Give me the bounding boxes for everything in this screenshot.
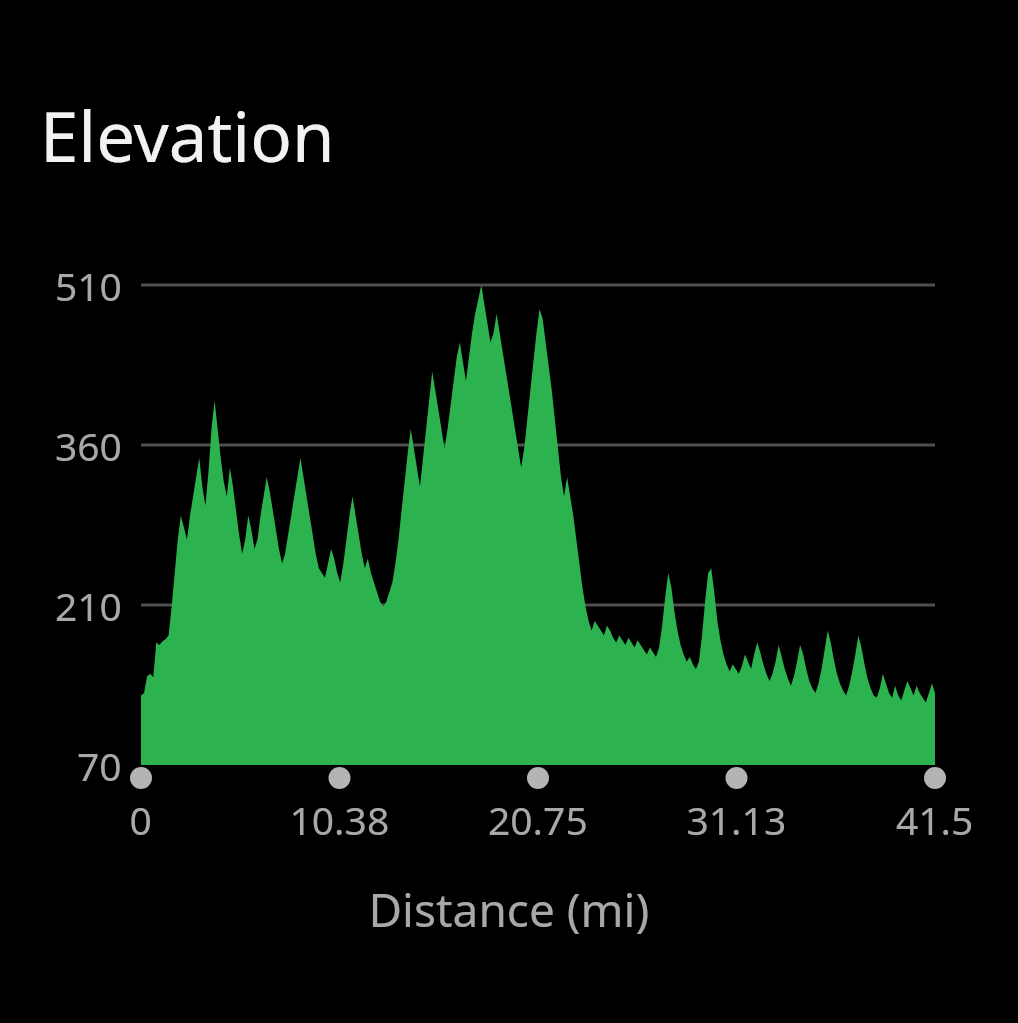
button[interactable]: Elevation chart (0, 0, 1018, 1023)
